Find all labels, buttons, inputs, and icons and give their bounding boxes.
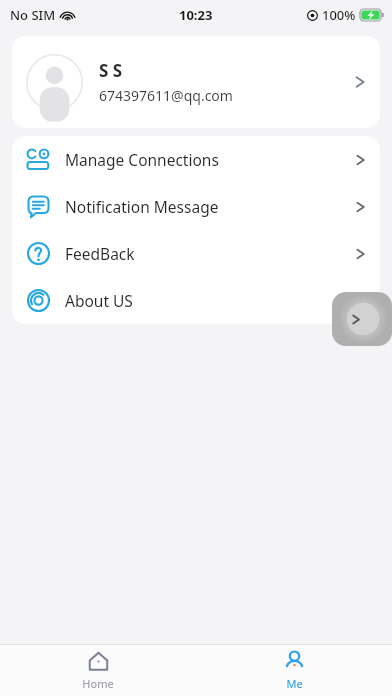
button[interactable]: Manage Connections [12, 136, 380, 183]
staticText: Me [286, 676, 303, 691]
button[interactable]: FeedBack [12, 230, 380, 277]
staticText: FeedBack [65, 243, 355, 264]
staticText: About US [65, 290, 355, 311]
staticText: 10:23 [179, 6, 213, 24]
staticText: Home [82, 676, 114, 691]
button[interactable]: Notification Message [12, 183, 380, 230]
button[interactable]: About US [12, 277, 380, 324]
button[interactable]: Me [251, 645, 337, 696]
staticText: S S [99, 59, 123, 82]
button[interactable]: Assistive Touch [332, 292, 392, 346]
staticText: No SIM [10, 6, 56, 24]
staticText: Notification Message [65, 196, 355, 217]
button[interactable]: Home [55, 645, 141, 696]
staticText: Manage Connections [65, 149, 355, 170]
staticText: 674397611@qq.com [99, 86, 233, 105]
staticText: 100% [322, 6, 356, 24]
button[interactable]: S S [12, 36, 380, 128]
